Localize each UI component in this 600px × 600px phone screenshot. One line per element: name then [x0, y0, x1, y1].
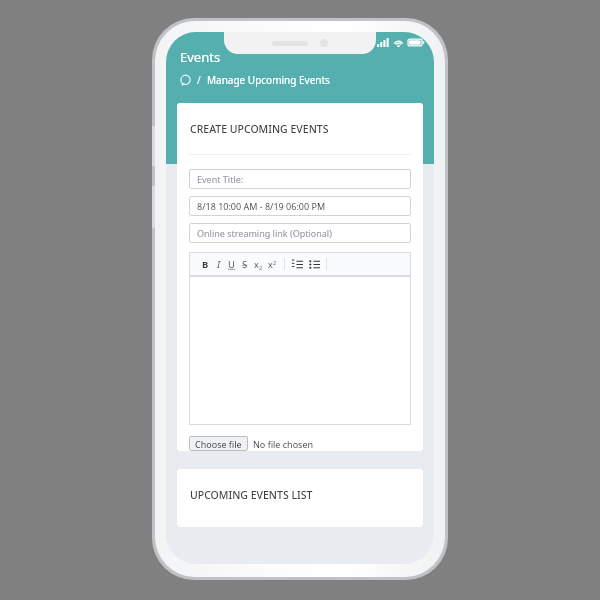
staticText: B — [202, 258, 209, 271]
staticText: x — [268, 258, 273, 270]
staticText: Choose file — [195, 438, 242, 449]
staticText: 8/18 10:00 AM - 8/19 06:00 PM — [197, 200, 326, 212]
staticText: 2 — [273, 259, 277, 266]
button[interactable]: Online streaming link (Optional) — [189, 223, 411, 243]
button[interactable]: UPCOMING EVENTS LIST — [177, 469, 423, 527]
other: Home — [180, 75, 191, 86]
staticText: I — [217, 258, 221, 271]
staticText: S — [242, 258, 248, 271]
staticText: Event Title: — [197, 173, 244, 185]
button[interactable]: Choose file — [189, 436, 248, 451]
button[interactable] — [189, 276, 411, 425]
button[interactable]: S — [238, 256, 251, 272]
staticText: U — [228, 258, 235, 271]
button[interactable]: Numbered list — [291, 256, 303, 272]
staticText: Manage Upcoming Events — [207, 73, 330, 87]
staticText: Online streaming link (Optional) — [197, 227, 332, 239]
button[interactable]: B — [199, 256, 212, 272]
button[interactable]: Event Title: — [189, 169, 411, 189]
staticText: UPCOMING EVENTS LIST — [190, 488, 313, 502]
button[interactable]: I — [212, 256, 225, 272]
button[interactable]: 8/18 10:00 AM - 8/19 06:00 PM — [189, 196, 411, 216]
staticText: No file chosen — [253, 438, 314, 450]
staticText: 2 — [259, 264, 263, 271]
staticText: / — [197, 73, 201, 87]
button[interactable]: Bulleted list — [308, 256, 320, 272]
button[interactable]: Subscript — [251, 256, 265, 272]
button[interactable]: Home — [180, 73, 330, 87]
staticText: CREATE UPCOMING EVENTS — [190, 122, 329, 136]
button[interactable]: U — [225, 256, 238, 272]
button[interactable]: Superscript — [265, 256, 279, 272]
staticText: x — [254, 258, 259, 270]
staticText: Events — [180, 48, 221, 66]
